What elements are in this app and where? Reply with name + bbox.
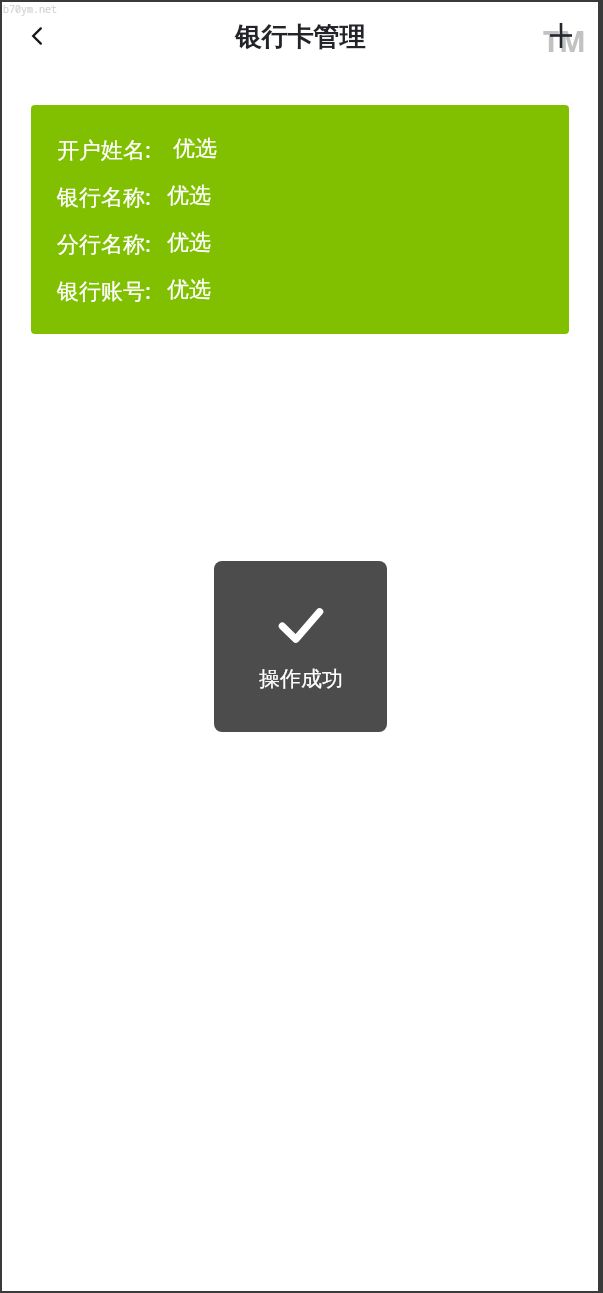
staticText: 银行账号: [57, 275, 151, 305]
staticText: TM [543, 22, 586, 60]
button[interactable]: 开户姓名: [31, 105, 569, 334]
staticText: 优选 [167, 182, 211, 210]
staticText: 分行名称: [57, 228, 151, 258]
staticText: b70ym.net [3, 2, 57, 16]
staticText: 银行名称: [57, 181, 151, 211]
staticText: 优选 [167, 229, 211, 257]
staticText: 优选 [167, 276, 211, 304]
button[interactable]: Add [535, 16, 593, 62]
button[interactable]: Back [15, 14, 59, 58]
staticText: 优选 [173, 135, 217, 163]
staticText: 开户姓名: [57, 134, 151, 164]
staticText: 操作成功 [259, 666, 343, 692]
staticText: 银行卡管理 [235, 21, 365, 54]
